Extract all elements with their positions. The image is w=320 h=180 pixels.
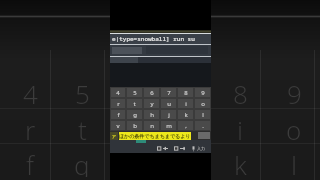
button[interactable]: u xyxy=(161,99,176,108)
staticText: t xyxy=(78,112,87,142)
button[interactable]: m xyxy=(161,121,176,130)
button[interactable]: t xyxy=(127,99,142,108)
staticText: . xyxy=(202,122,204,130)
button[interactable]: Previous xyxy=(157,145,169,152)
staticText: e|type=snowball] run su xyxy=(112,35,195,43)
staticText: l xyxy=(202,111,204,119)
staticText: 8 xyxy=(184,89,188,97)
button[interactable]: g xyxy=(127,110,142,119)
staticText: o xyxy=(201,100,205,108)
staticText: t xyxy=(133,100,136,108)
staticText: 9 xyxy=(201,89,205,97)
staticText: u xyxy=(167,100,171,108)
staticText: k xyxy=(184,111,188,119)
staticText: 4 xyxy=(116,89,120,97)
button[interactable]: 8 xyxy=(178,88,193,97)
button[interactable]: . xyxy=(195,121,210,130)
button[interactable]: , xyxy=(178,121,193,130)
button[interactable]: j xyxy=(161,110,176,119)
staticText: 6 xyxy=(150,89,154,97)
staticText: 7 xyxy=(167,89,171,97)
button[interactable]: 4 xyxy=(111,88,125,97)
button[interactable]: k xyxy=(178,110,193,119)
button[interactable]: b xyxy=(127,121,142,130)
button[interactable]: i xyxy=(178,99,193,108)
button[interactable]: y xyxy=(144,99,159,108)
staticText: 4 xyxy=(23,76,38,106)
button[interactable]: o xyxy=(195,99,210,108)
staticText: f xyxy=(26,147,35,177)
staticText: k xyxy=(234,147,247,177)
staticText: ほかの条件でちまちまでるより xyxy=(119,133,191,139)
button[interactable]: r xyxy=(111,99,125,108)
staticText: 8 xyxy=(233,76,248,106)
staticText: , xyxy=(185,122,187,130)
staticText: j xyxy=(168,111,170,119)
staticText: v xyxy=(116,122,120,130)
staticText: 入力 xyxy=(197,146,205,151)
staticText: y xyxy=(150,100,154,108)
button[interactable]: 6 xyxy=(144,88,159,97)
staticText: i xyxy=(185,100,187,108)
staticText: i xyxy=(237,112,244,142)
button[interactable]: n xyxy=(144,121,159,130)
button[interactable]: 7 xyxy=(161,88,176,97)
button[interactable]: 5 xyxy=(127,88,142,97)
button[interactable]: v xyxy=(111,121,125,130)
staticText: g xyxy=(133,111,137,119)
staticText: ア xyxy=(112,134,117,139)
button[interactable]: h xyxy=(144,110,159,119)
staticText: 9 xyxy=(287,76,302,106)
staticText: h xyxy=(150,111,154,119)
staticText: g xyxy=(74,147,90,177)
button[interactable]: Next xyxy=(174,145,186,152)
staticText: 5 xyxy=(133,89,137,97)
staticText: m xyxy=(166,122,172,130)
button[interactable]: e|type=snowball] run su xyxy=(110,34,211,44)
button[interactable]: l xyxy=(195,110,210,119)
button[interactable]: 9 xyxy=(195,88,210,97)
staticText: f xyxy=(117,111,120,119)
button[interactable]: f xyxy=(111,110,125,119)
staticText: r xyxy=(25,112,36,142)
staticText: l xyxy=(291,147,298,177)
staticText: o xyxy=(286,112,302,142)
button[interactable]: ほかの条件でちまちまでるより xyxy=(119,132,191,140)
staticText: r xyxy=(117,100,120,108)
button[interactable]: Voice input xyxy=(191,145,209,152)
staticText: n xyxy=(150,122,154,130)
staticText: 5 xyxy=(75,76,90,106)
button[interactable]: Video player xyxy=(110,0,211,180)
staticText: b xyxy=(133,122,137,130)
button[interactable]: Symbols xyxy=(110,132,118,140)
